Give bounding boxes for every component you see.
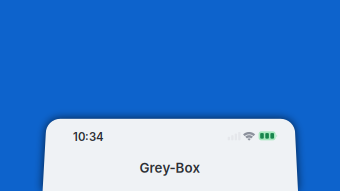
staticText: Grey-Box (139, 160, 200, 176)
staticText: 10:34 (73, 130, 104, 144)
